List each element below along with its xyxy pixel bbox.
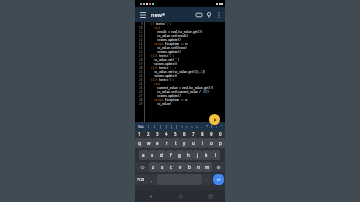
button[interactable]: 6 [180, 131, 189, 137]
button[interactable]: : [214, 122, 219, 131]
staticText: ) [154, 124, 156, 129]
button[interactable]: Run [209, 114, 220, 125]
button[interactable]: Backspace [212, 162, 225, 172]
button[interactable]: + [194, 122, 199, 131]
button[interactable]: r [162, 138, 171, 148]
button[interactable]: " [219, 122, 224, 131]
button[interactable]: 8 [198, 131, 207, 137]
staticText: elif text=='<-': [148, 66, 177, 70]
button[interactable]: [ [169, 122, 174, 131]
button[interactable]: > [184, 122, 189, 131]
staticText: o [210, 140, 213, 146]
button[interactable]: More options [214, 10, 223, 19]
button[interactable]: < [179, 122, 184, 131]
staticText: : [216, 124, 217, 129]
button[interactable]: 9 [207, 131, 216, 137]
staticText: except Exception as e: [148, 42, 189, 46]
staticText: elif text=="C": [148, 54, 175, 58]
button[interactable]: 5 [171, 131, 180, 137]
staticText: 24 [139, 82, 143, 86]
button[interactable]: / [209, 122, 214, 131]
button[interactable]: ] [174, 122, 179, 131]
staticText: 10 [139, 26, 143, 30]
button[interactable]: - [199, 122, 204, 131]
staticText: 7 [192, 131, 195, 137]
button[interactable]: t [171, 138, 180, 148]
staticText: 17 [139, 54, 143, 58]
button[interactable]: ( [146, 122, 152, 131]
button[interactable]: s [148, 150, 157, 160]
button[interactable]: { [158, 122, 164, 131]
staticText: " [221, 124, 223, 129]
button[interactable]: * [204, 122, 209, 131]
button[interactable]: } [164, 122, 169, 131]
button[interactable]: 3 [153, 131, 162, 137]
button[interactable]: n [194, 162, 203, 172]
button[interactable]: p [216, 138, 225, 148]
button[interactable]: a [139, 150, 148, 160]
button[interactable]: ) [152, 122, 158, 131]
staticText: - [201, 124, 203, 129]
button[interactable]: h [184, 150, 193, 160]
staticText: 14 [139, 42, 143, 46]
staticText: e [156, 140, 159, 146]
staticText: h [187, 152, 190, 158]
staticText: 0 [219, 131, 222, 137]
button[interactable]: d [157, 150, 166, 160]
button[interactable]: Enter [213, 174, 224, 185]
button[interactable]: Shift [135, 162, 149, 172]
staticText: screen.update() [148, 74, 178, 78]
button[interactable]: ?123 [135, 174, 147, 185]
button[interactable]: Back [135, 190, 165, 202]
staticText: screen.update() [148, 94, 181, 98]
button[interactable]: m [203, 162, 212, 172]
button[interactable]: j [193, 150, 202, 160]
button[interactable]: w [144, 138, 153, 148]
button[interactable]: u [189, 138, 198, 148]
staticText: screen.update() [148, 38, 181, 42]
button[interactable]: f [166, 150, 175, 160]
button[interactable]: 4 [162, 131, 171, 137]
button[interactable]: 0 [216, 131, 225, 137]
staticText: c [170, 164, 173, 170]
button[interactable]: y [180, 138, 189, 148]
staticText: q [138, 140, 141, 146]
staticText: 5 [174, 131, 177, 137]
button[interactable]: k [202, 150, 211, 160]
button[interactable]: b [185, 162, 194, 172]
staticText: new* [151, 11, 165, 18]
button[interactable]: 7 [189, 131, 198, 137]
staticText: * [206, 124, 208, 129]
staticText: i [202, 140, 204, 146]
button[interactable]: Open file [194, 10, 203, 19]
button[interactable]: c [167, 162, 176, 172]
staticText: sc_value.set(sc_value.get()[:-1]) [148, 70, 206, 74]
staticText: 9 [210, 131, 213, 137]
button[interactable]: Home [165, 190, 195, 202]
button[interactable]: , [147, 174, 157, 185]
button[interactable]: e [153, 138, 162, 148]
button[interactable]: z [149, 162, 158, 172]
button[interactable]: . [202, 174, 212, 185]
button[interactable]: o [207, 138, 216, 148]
button[interactable]: Tab [136, 122, 146, 131]
staticText: < [181, 124, 183, 129]
button[interactable]: l [211, 150, 220, 160]
button[interactable]: = [189, 122, 194, 131]
staticText: n [197, 164, 200, 170]
staticText: { [160, 124, 162, 129]
staticText: 11 [139, 30, 143, 34]
staticText: 21 [139, 70, 143, 74]
button[interactable]: q [135, 138, 144, 148]
button[interactable]: 2 [144, 131, 153, 137]
button[interactable]: x [158, 162, 167, 172]
button[interactable]: g [175, 150, 184, 160]
button[interactable]: i [198, 138, 207, 148]
staticText: r [166, 140, 168, 146]
button[interactable]: 1 [135, 131, 144, 137]
button[interactable]: Recent apps [195, 190, 225, 202]
button[interactable]: v [176, 162, 185, 172]
button[interactable]: Navigation menu [138, 10, 147, 19]
button[interactable]: Search [204, 10, 213, 19]
